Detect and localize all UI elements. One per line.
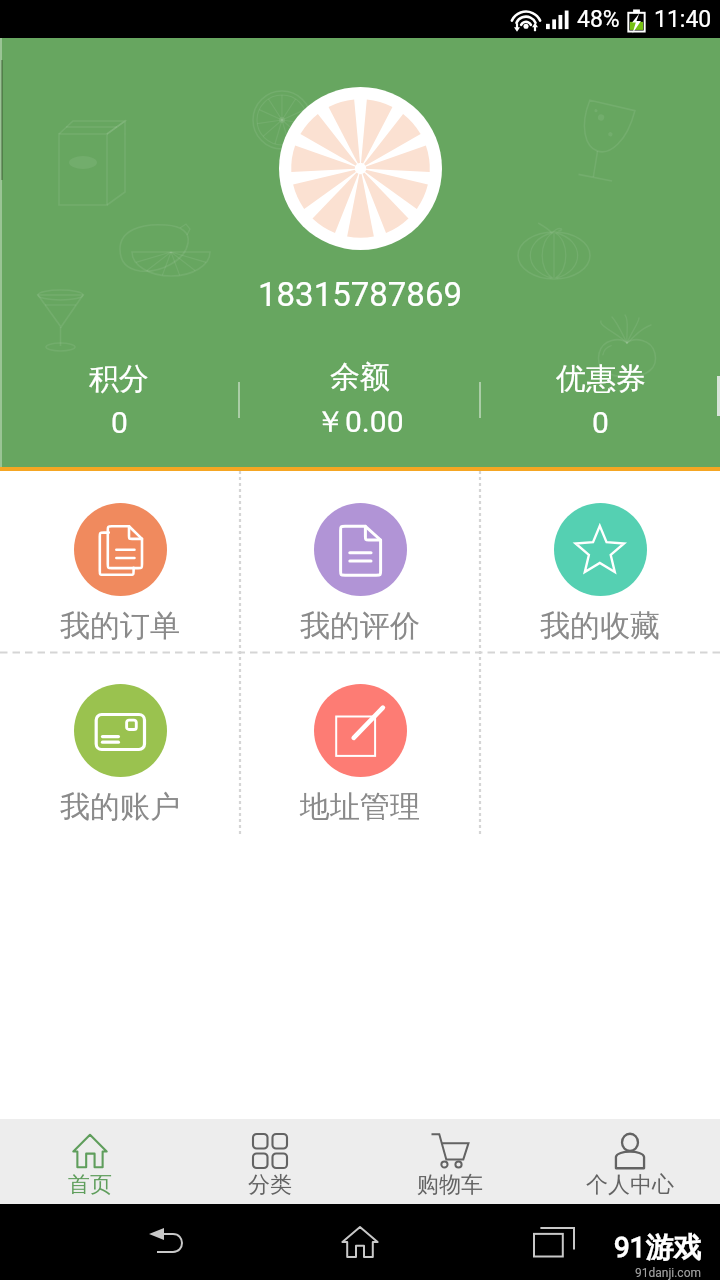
button[interactable]: 首页: [0, 1119, 180, 1204]
staticText: 我的评价: [300, 607, 420, 645]
button[interactable]: 购物车: [360, 1119, 540, 1204]
staticText: 积分: [89, 360, 149, 398]
button[interactable]: 我的评价: [240, 471, 480, 652]
button[interactable]: 用户头像: [279, 87, 442, 250]
button[interactable]: 积分: [0, 360, 238, 440]
staticText: 48%: [577, 6, 620, 33]
staticText: 我的账户: [60, 788, 180, 826]
staticText: 0: [111, 405, 128, 440]
staticText: 我的订单: [60, 607, 180, 645]
button[interactable]: 我的收藏: [480, 471, 720, 652]
button[interactable]: 返回: [146, 1222, 186, 1262]
button[interactable]: 地址管理: [240, 652, 480, 834]
staticText: 购物车: [417, 1171, 483, 1199]
button[interactable]: 最近任务: [534, 1222, 574, 1262]
staticText: 地址管理: [300, 788, 420, 826]
staticText: 91danji.com: [635, 1266, 702, 1280]
staticText: 11:40: [654, 6, 712, 33]
button[interactable]: 个人中心: [540, 1119, 720, 1204]
staticText: 91游戏: [614, 1230, 702, 1265]
staticText: 0: [592, 405, 609, 440]
button[interactable]: 主页: [340, 1222, 380, 1262]
staticText: 分类: [248, 1171, 292, 1199]
button[interactable]: 优惠券: [481, 360, 720, 440]
staticText: 余额: [330, 358, 390, 396]
button[interactable]: 余额: [240, 358, 479, 441]
button[interactable]: 我的订单: [0, 471, 240, 652]
staticText: 我的收藏: [540, 607, 660, 645]
button[interactable]: 分类: [180, 1119, 360, 1204]
button[interactable]: 我的账户: [0, 652, 240, 834]
staticText: 18315787869: [258, 275, 463, 314]
staticText: 个人中心: [586, 1171, 674, 1199]
staticText: 首页: [68, 1171, 112, 1199]
staticText: ￥0.00: [315, 403, 404, 441]
staticText: 优惠券: [556, 360, 646, 398]
